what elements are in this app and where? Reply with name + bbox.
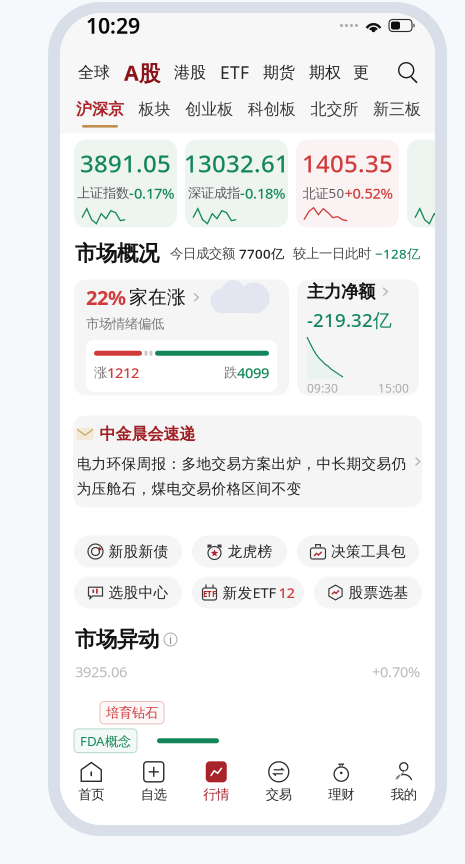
staticText: 深证成指: [188, 185, 240, 201]
staticText: 3891.05: [80, 147, 171, 179]
staticText: 新股新债: [108, 542, 168, 560]
staticText: 跌: [224, 364, 237, 381]
staticText: 市场情绪偏低: [86, 316, 164, 332]
button[interactable]: 科创板: [248, 99, 296, 128]
staticText: 理财: [328, 786, 354, 803]
staticText: 培育钻石: [106, 704, 158, 721]
staticText: 3925.06: [75, 662, 127, 681]
staticText: -0.18%: [240, 183, 285, 203]
staticText: 市场异动: [75, 626, 159, 653]
button[interactable]: 板块: [139, 99, 171, 128]
staticText: 北交所: [310, 99, 358, 119]
staticText: 决策工具包: [331, 542, 406, 560]
staticText: 市场概况: [75, 240, 159, 267]
button[interactable]: 主力净额: [297, 279, 419, 395]
staticText: 1405.35: [302, 147, 393, 179]
staticText: 涨: [94, 364, 107, 381]
staticText: 家在涨: [129, 286, 186, 309]
button[interactable]: 3: [407, 139, 465, 227]
staticText: 股票选基: [348, 583, 408, 601]
staticText: 1212: [107, 363, 139, 382]
button[interactable]: 自选: [122, 761, 185, 807]
button[interactable]: 新三板: [373, 99, 421, 128]
button[interactable]: 中金晨会速递: [73, 415, 422, 507]
button[interactable]: 决策工具包: [297, 535, 419, 567]
button[interactable]: 首页: [60, 761, 122, 807]
staticText: −128亿: [375, 245, 420, 262]
staticText: 沪深京: [76, 99, 124, 119]
button[interactable]: 交易: [247, 761, 310, 807]
staticText: 10:29: [86, 11, 140, 40]
staticText: 板块: [139, 99, 171, 119]
staticText: -0.17%: [129, 183, 174, 203]
staticText: 交易: [266, 786, 292, 803]
staticText: 行情: [203, 786, 229, 803]
staticText: 12: [278, 583, 294, 602]
staticText: A股: [124, 58, 160, 87]
staticText: 期权: [309, 63, 341, 82]
staticText: 中金晨会速递: [99, 424, 195, 444]
button[interactable]: 3891.05: [74, 139, 177, 227]
button[interactable]: 沪深京: [76, 99, 124, 128]
staticText: 上证指数: [77, 185, 129, 201]
button[interactable]: ETF: [192, 576, 304, 608]
staticText: 期货: [263, 63, 295, 82]
staticText: FDA概念: [80, 732, 131, 750]
staticText: 新发ETF: [222, 583, 276, 602]
staticText: 新三板: [373, 99, 421, 119]
button[interactable]: 期货: [263, 63, 295, 82]
staticText: 自选: [141, 786, 167, 803]
staticText: +0.70%: [372, 662, 420, 681]
button[interactable]: ETF: [220, 61, 249, 84]
button[interactable]: 全球: [78, 63, 110, 82]
staticText: 港股: [174, 63, 206, 82]
staticText: 22%: [86, 284, 126, 311]
button[interactable]: 港股: [174, 63, 206, 82]
staticText: 科创板: [248, 99, 296, 119]
button[interactable]: 更: [353, 63, 369, 82]
button[interactable]: 新股新债: [74, 535, 182, 567]
button[interactable]: 股票选基: [314, 576, 422, 608]
staticText: 创业板: [185, 99, 233, 119]
staticText: 15:00: [378, 380, 409, 396]
staticText: ETF: [203, 589, 216, 599]
staticText: 09:30: [307, 380, 338, 396]
button[interactable]: 22%: [74, 279, 289, 395]
button[interactable]: 龙虎榜: [192, 535, 287, 567]
staticText: 今日成交额: [170, 245, 239, 262]
staticText: -219.32亿: [307, 307, 392, 332]
button[interactable]: Search: [397, 61, 419, 84]
button[interactable]: 北交所: [310, 99, 358, 128]
button[interactable]: 期权: [309, 63, 341, 82]
staticText: 7700亿: [239, 245, 284, 262]
staticText: i: [169, 631, 172, 647]
staticText: ETF: [220, 61, 249, 84]
button[interactable]: 我的: [372, 761, 435, 807]
button[interactable]: 理财: [310, 761, 372, 807]
staticText: 龙虎榜: [227, 542, 272, 560]
staticText: 北证50: [302, 184, 344, 202]
button[interactable]: A股: [124, 58, 160, 87]
button[interactable]: 选股中心: [74, 576, 182, 608]
staticText: 电力环保周报：多地交易方案出炉，中长期交易仍: [76, 455, 406, 473]
button[interactable]: 创业板: [185, 99, 233, 128]
staticText: 我的: [391, 786, 417, 803]
staticText: 选股中心: [108, 583, 168, 601]
staticText: 首页: [78, 786, 104, 803]
staticText: 13032.61: [184, 147, 289, 179]
staticText: 主力净额: [307, 281, 375, 302]
button[interactable]: 1405.35: [296, 139, 399, 227]
staticText: +0.52%: [344, 183, 392, 203]
staticText: 4099: [237, 363, 269, 382]
staticText: 更: [353, 63, 369, 82]
button[interactable]: 行情: [185, 761, 247, 807]
staticText: 为压舱石，煤电交易价格区间不变: [76, 480, 301, 498]
staticText: 较上一日此时: [293, 245, 375, 262]
button[interactable]: 13032.61: [185, 139, 288, 227]
staticText: 全球: [78, 63, 110, 82]
staticText: 创业: [445, 185, 465, 201]
